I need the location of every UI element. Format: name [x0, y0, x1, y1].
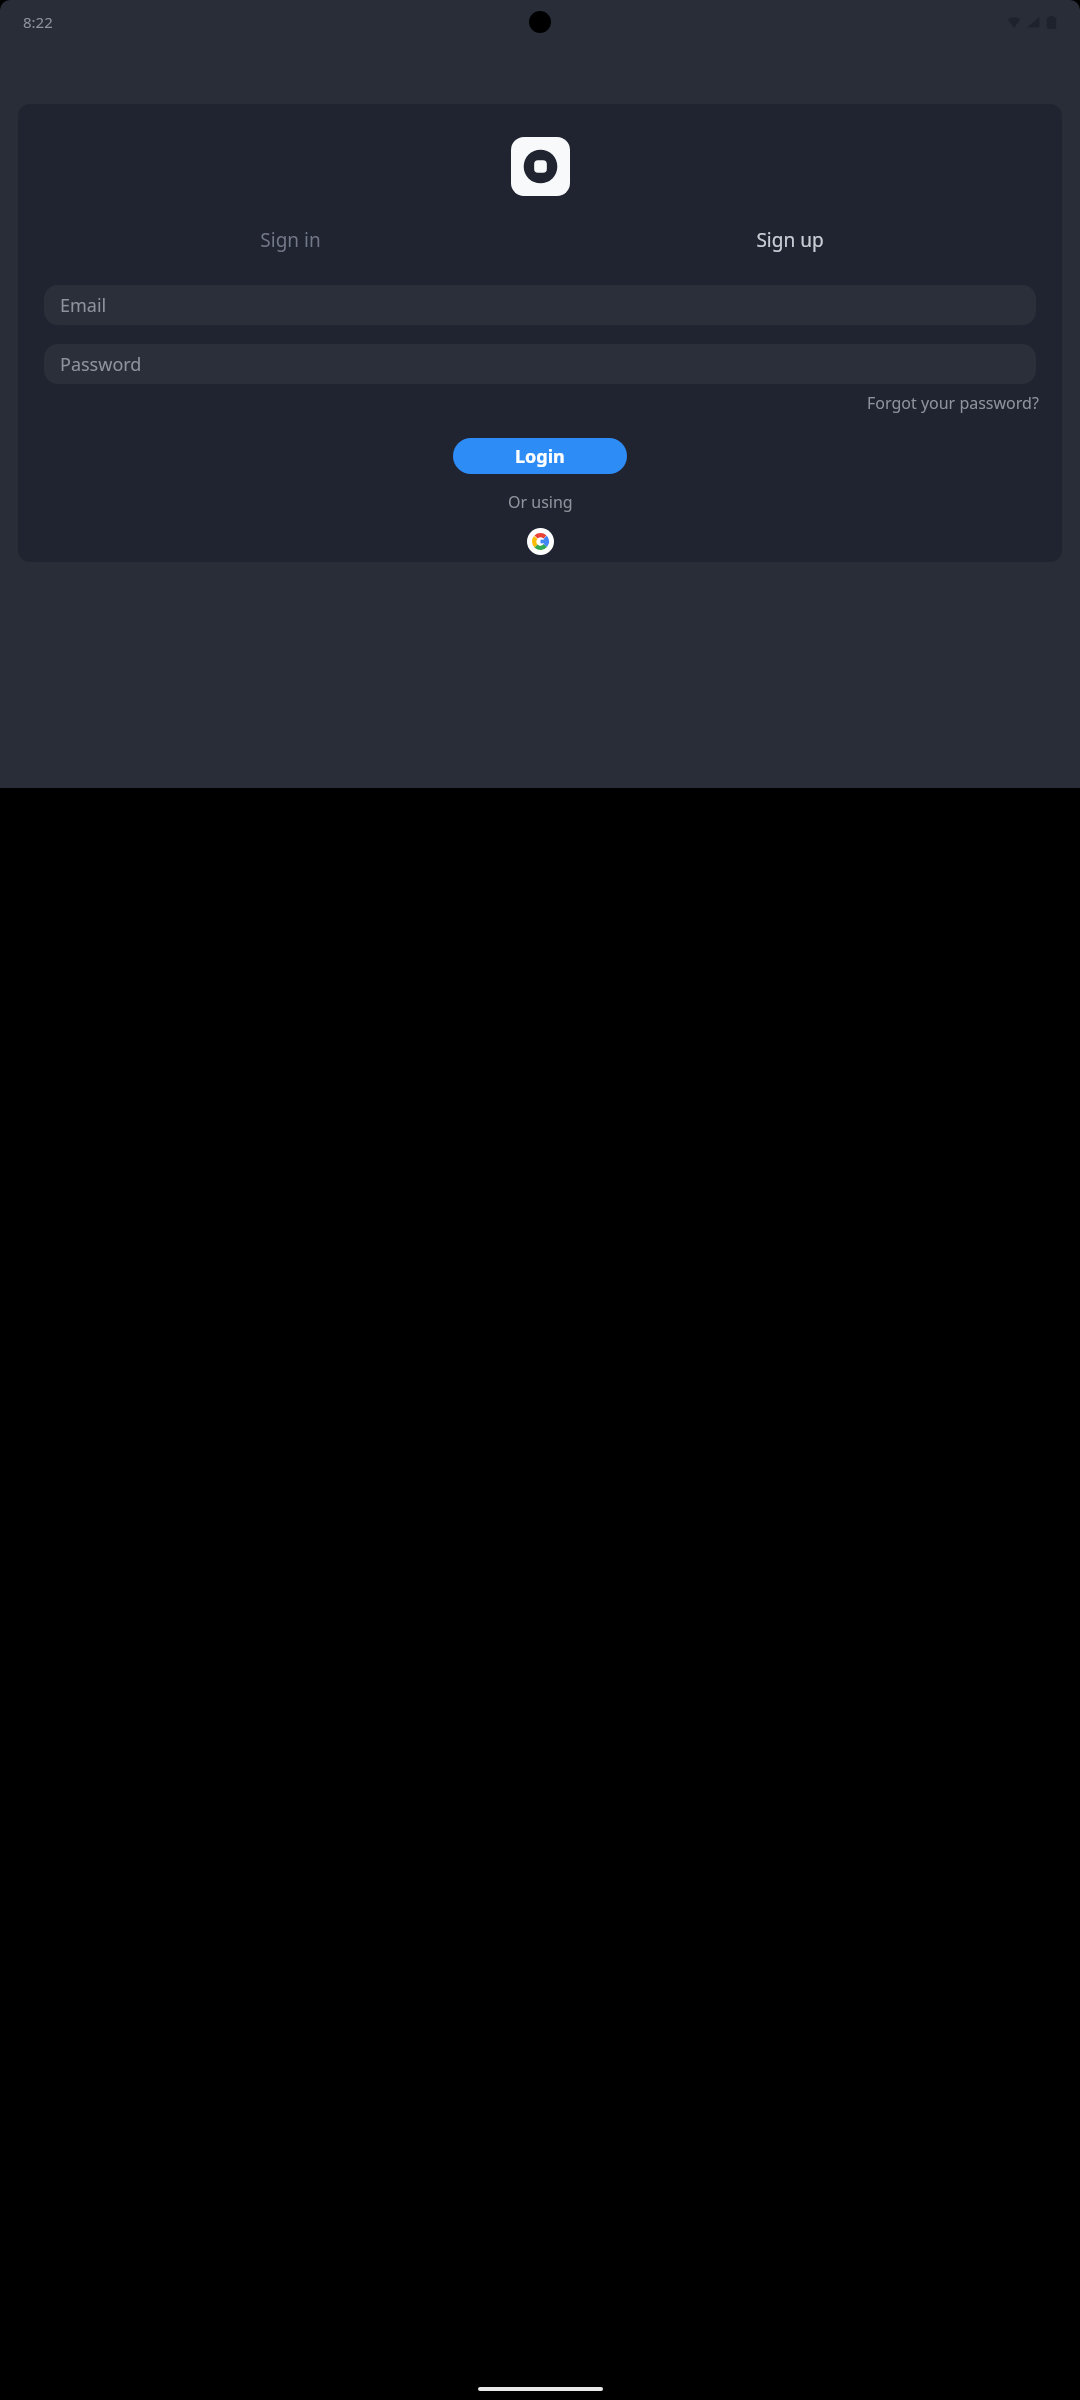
button[interactable]: Sign up — [540, 227, 1040, 253]
button[interactable]: Sign in — [40, 227, 540, 253]
staticText: Login — [515, 444, 565, 469]
button[interactable]: Email — [44, 285, 1036, 325]
staticText: Or using — [508, 491, 573, 513]
staticText: 8:22 — [23, 12, 53, 32]
staticText: Password — [60, 352, 142, 377]
button[interactable]: Forgot your password? — [867, 392, 1039, 414]
staticText: Forgot your password? — [867, 392, 1039, 414]
button[interactable]: Password — [44, 344, 1036, 384]
button[interactable]: Sign in with Google — [527, 528, 554, 555]
staticText: Sign up — [756, 227, 824, 253]
staticText: Sign in — [260, 227, 321, 253]
staticText: Email — [60, 293, 107, 318]
button[interactable]: Login — [453, 438, 627, 474]
